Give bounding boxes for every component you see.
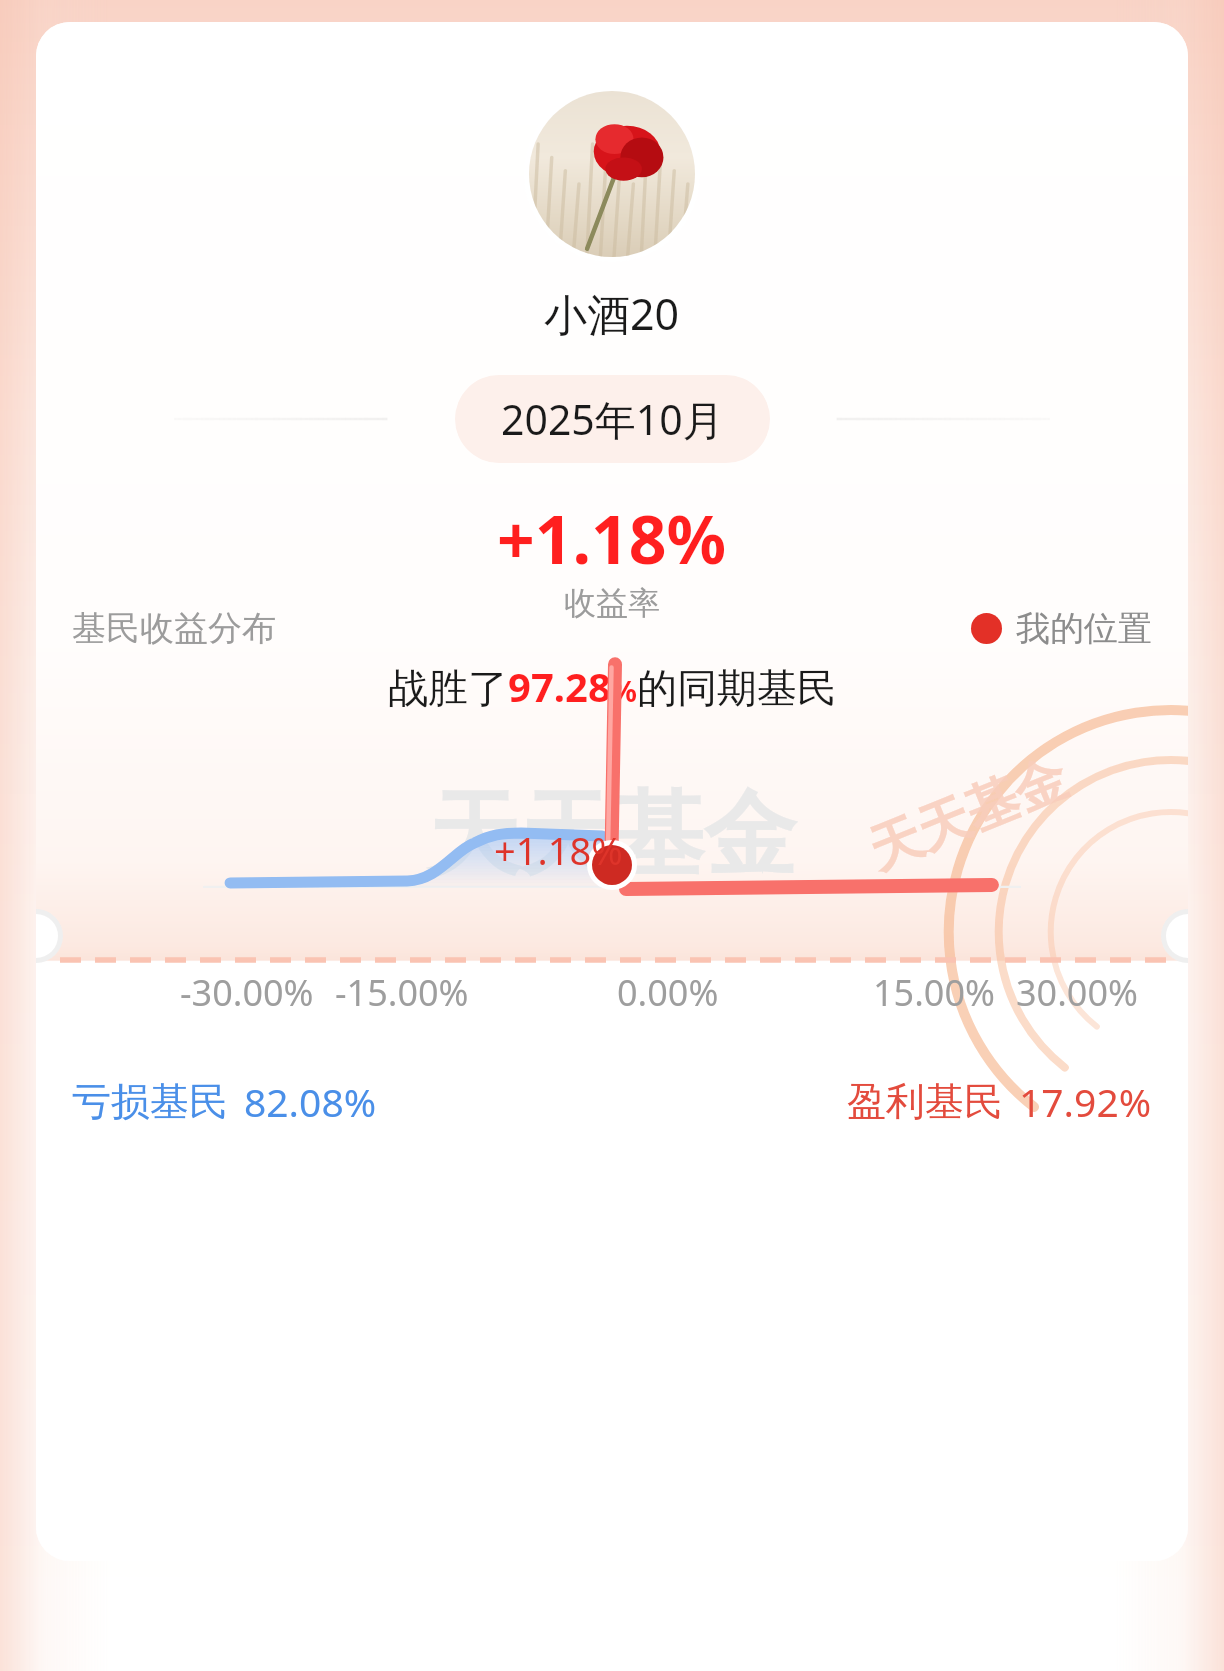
staticText: 17.92% [1019, 1075, 1152, 1128]
button[interactable]: 2025年10月 [455, 375, 770, 463]
staticText: 0.00% [617, 968, 719, 1017]
staticText: 盈利基民 [847, 1077, 1003, 1126]
button[interactable]: Profile avatar [529, 91, 695, 257]
staticText: 15.00% [873, 968, 995, 1017]
staticText: -15.00% [335, 968, 469, 1017]
staticText: 亏损基民 [72, 1077, 228, 1126]
staticText: +1.18% [494, 824, 623, 876]
staticText: 小酒20 [544, 284, 680, 343]
staticText: 2025年10月 [501, 391, 724, 447]
staticText: 收益率 [564, 583, 660, 623]
staticText: 我的位置 [1016, 607, 1152, 650]
staticText: -30.00% [180, 968, 314, 1017]
staticText: +1.18% [497, 493, 727, 583]
staticText: 战胜了97.28%的同期基民 [388, 659, 837, 714]
staticText: 天天基金 [428, 777, 796, 893]
staticText: 82.08% [244, 1075, 377, 1128]
button[interactable]: 亏损基民 [72, 1075, 377, 1128]
staticText: 天天基金 [859, 745, 1077, 884]
staticText: 30.00% [1016, 968, 1138, 1017]
button[interactable]: 我的位置 [971, 607, 1152, 650]
staticText: 基民收益分布 [72, 607, 276, 650]
button[interactable]: 盈利基民 [847, 1075, 1152, 1128]
